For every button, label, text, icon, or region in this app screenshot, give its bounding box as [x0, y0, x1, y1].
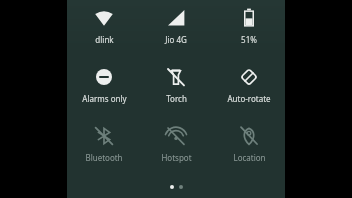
staticText: dlink	[95, 34, 114, 45]
button[interactable]: Bluetooth	[68, 124, 140, 165]
staticText: Torch	[166, 93, 187, 104]
button[interactable]: Wi-Fi dlink	[68, 6, 140, 47]
staticText: Hotspot	[161, 152, 192, 163]
staticText: Location	[233, 152, 266, 163]
button[interactable]: Mobile data Jio 4G	[140, 6, 212, 47]
button[interactable]: Torch	[140, 65, 212, 106]
button[interactable]: Battery 51 percent	[213, 6, 285, 47]
button[interactable]: Location	[213, 124, 285, 165]
button[interactable]: Do not disturb, alarms only	[68, 65, 140, 106]
button[interactable]: Auto rotate	[213, 65, 285, 106]
staticText: Auto-rotate	[227, 93, 271, 104]
staticText: Alarms only	[82, 93, 127, 104]
staticText: 51%	[241, 34, 257, 45]
button[interactable]: Hotspot	[140, 124, 212, 165]
staticText: Jio 4G	[165, 34, 187, 45]
staticText: Bluetooth	[85, 152, 123, 163]
